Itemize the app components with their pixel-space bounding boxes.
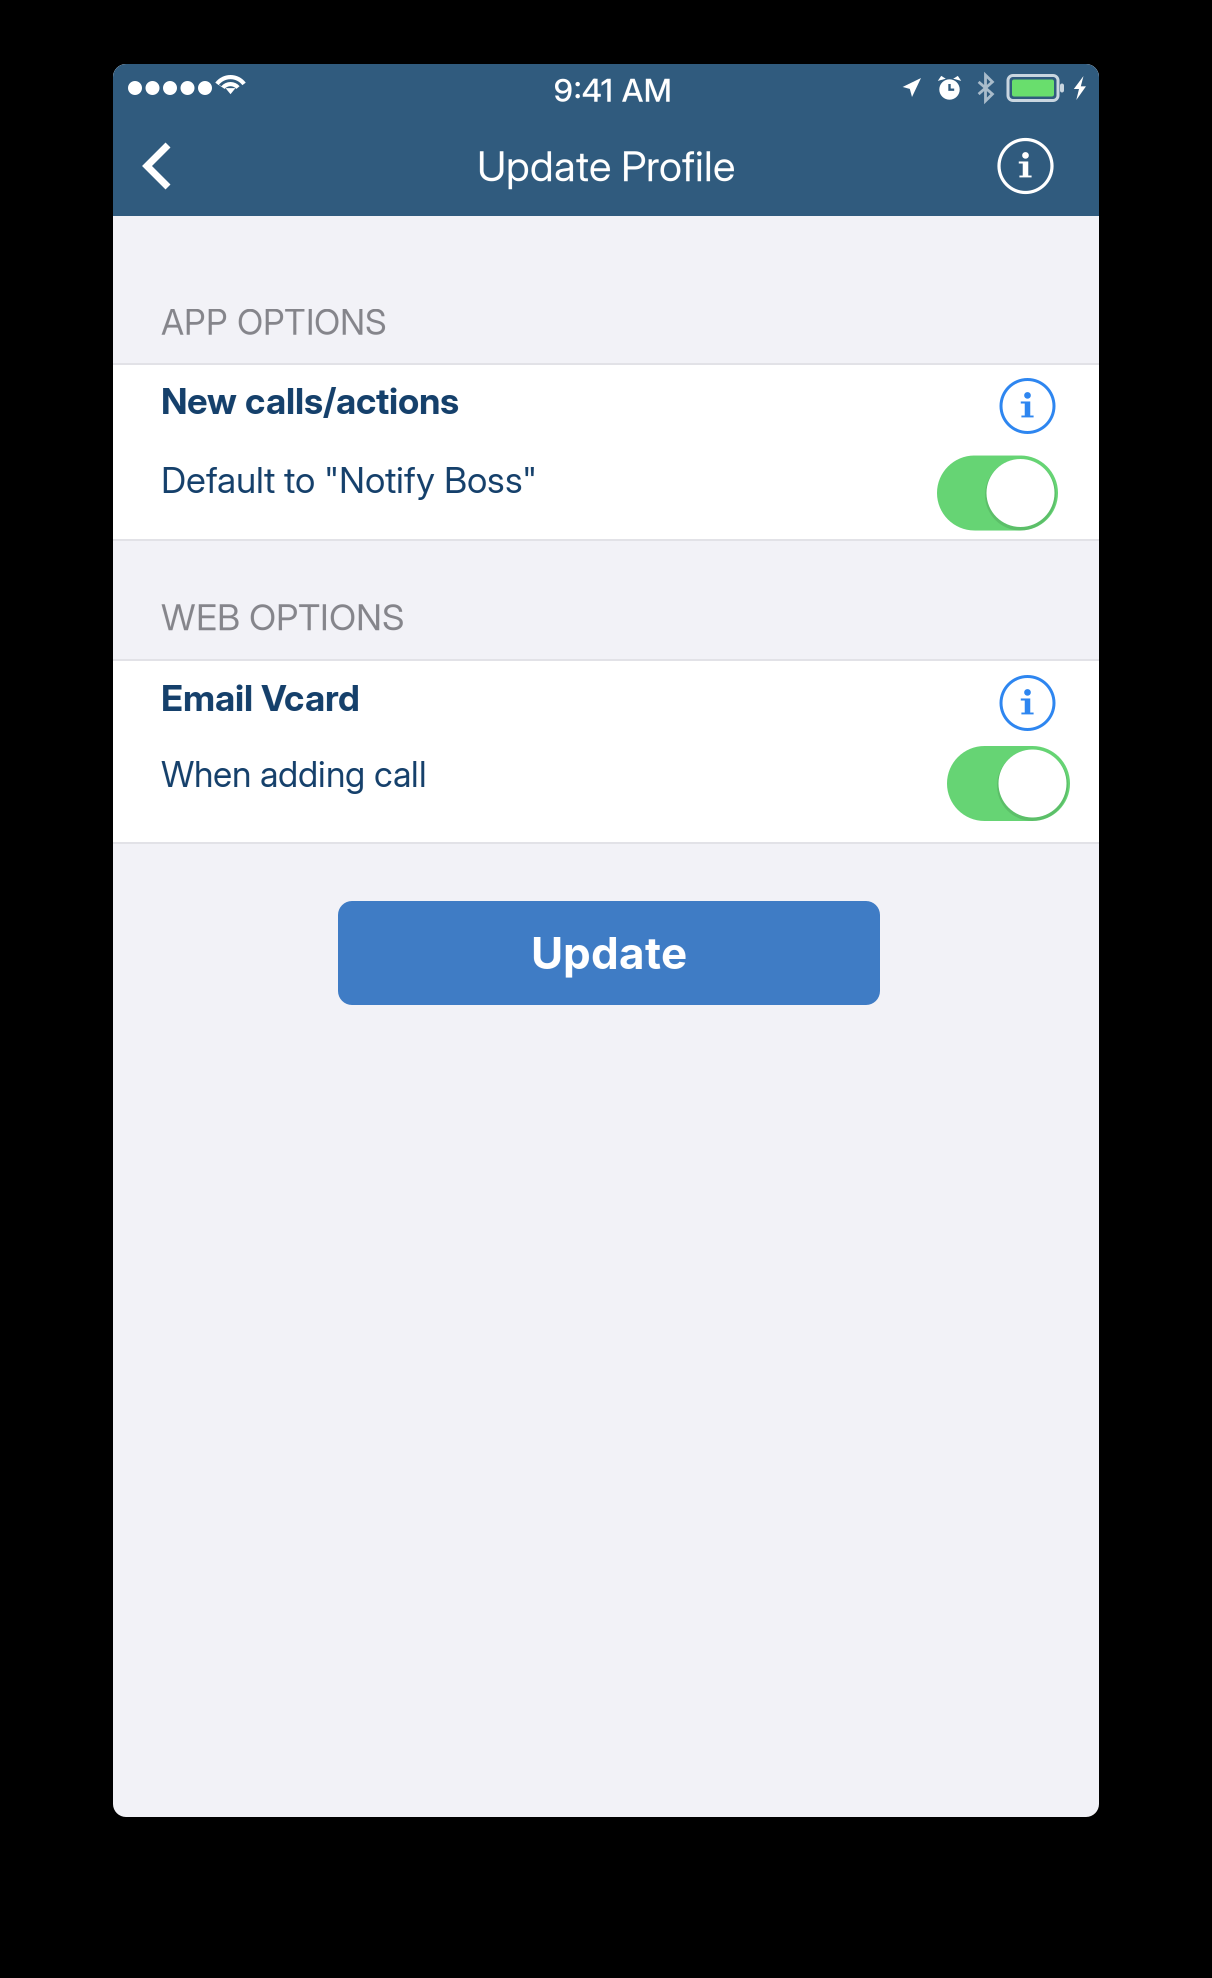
button[interactable]: More information about email vcard <box>991 666 1064 739</box>
staticText: 9:41 AM <box>553 71 671 109</box>
button[interactable]: When adding call <box>939 738 1078 829</box>
button[interactable]: Back <box>113 129 196 203</box>
staticText: Update Profile <box>477 141 735 191</box>
staticText: Default to "Notify Boss" <box>161 458 537 502</box>
staticText: WEB OPTIONS <box>161 595 404 639</box>
button[interactable]: More information about new calls and act… <box>991 369 1064 442</box>
staticText: Update <box>531 926 687 980</box>
staticText: APP OPTIONS <box>161 301 387 343</box>
staticText: Email Vcard <box>161 676 360 720</box>
staticText: New calls/actions <box>161 379 459 423</box>
staticText: When adding call <box>161 753 427 795</box>
button[interactable]: Information <box>975 123 1099 208</box>
button[interactable]: Default to Notify Boss <box>929 447 1066 538</box>
button[interactable]: Update <box>338 901 880 1005</box>
